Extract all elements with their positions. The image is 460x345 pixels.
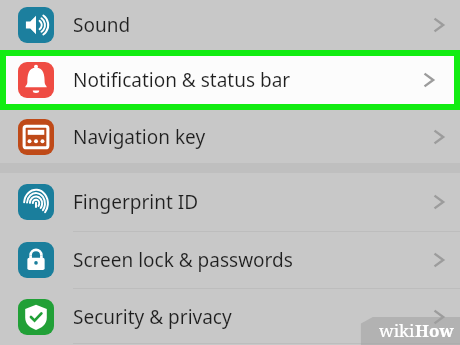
- button[interactable]: Fingerprint ID: [0, 173, 460, 231]
- staticText: How: [415, 319, 454, 342]
- button[interactable]: Screen lock & passwords: [0, 231, 460, 288]
- button[interactable]: Notification & status bar: [6, 56, 454, 104]
- button[interactable]: Sound: [0, 0, 460, 50]
- staticText: Security & privacy: [73, 304, 232, 330]
- button[interactable]: Security & privacy: [0, 288, 460, 345]
- staticText: Navigation key: [73, 124, 206, 150]
- staticText: Screen lock & passwords: [73, 247, 293, 273]
- staticText: Sound: [73, 12, 131, 38]
- staticText: Notification & status bar: [73, 67, 291, 93]
- staticText: wiki: [379, 319, 415, 342]
- staticText: Fingerprint ID: [73, 189, 199, 215]
- button[interactable]: Navigation key: [0, 110, 460, 163]
